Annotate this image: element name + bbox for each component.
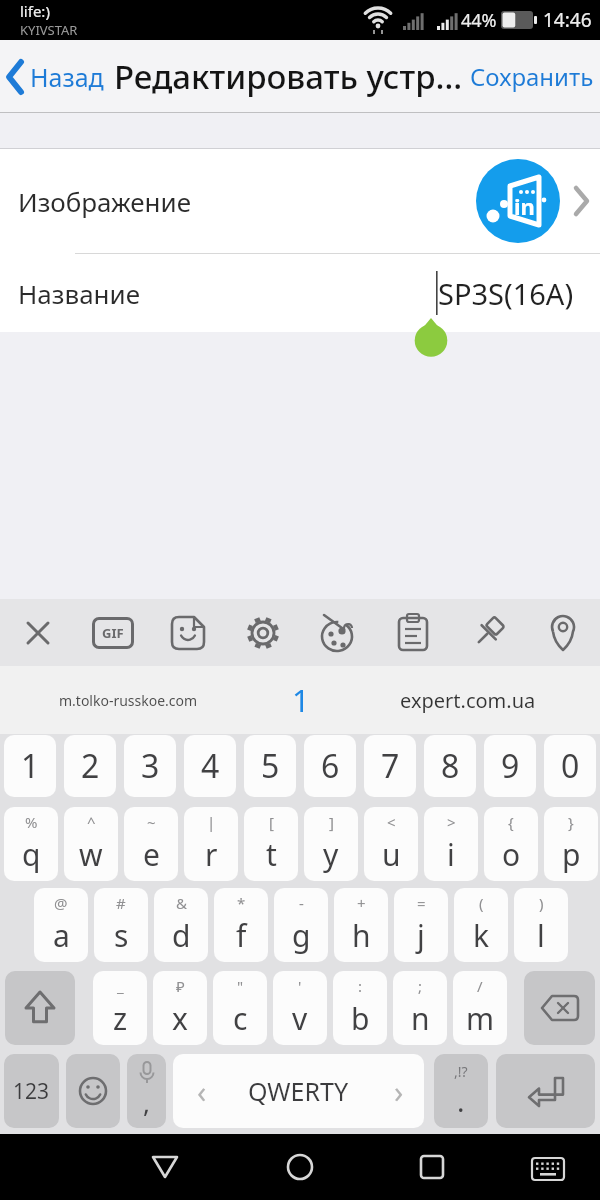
button[interactable]: ; bbox=[393, 971, 447, 1045]
staticText: < bbox=[387, 812, 396, 832]
button[interactable]: 3 bbox=[124, 735, 176, 797]
staticText: Название bbox=[18, 276, 141, 311]
button[interactable]: < bbox=[364, 807, 418, 881]
staticText: @ bbox=[54, 893, 68, 913]
staticText: } bbox=[568, 812, 574, 832]
button[interactable]: GIF bbox=[75, 599, 150, 666]
button[interactable]: ) bbox=[514, 888, 568, 962]
button[interactable]: 123 bbox=[4, 1054, 59, 1128]
button[interactable]: + bbox=[334, 888, 388, 962]
button[interactable]: ^ bbox=[64, 807, 118, 881]
staticText: ( bbox=[479, 893, 484, 913]
staticText: QWERTY bbox=[248, 1074, 349, 1108]
button[interactable] bbox=[531, 1157, 565, 1181]
staticText: Изображение bbox=[18, 184, 192, 219]
staticText: : bbox=[358, 976, 363, 996]
button[interactable]: _ bbox=[93, 971, 147, 1045]
staticText: SP3S(16A) bbox=[438, 274, 574, 313]
button[interactable] bbox=[5, 971, 75, 1045]
button[interactable]: } bbox=[544, 807, 598, 881]
button[interactable]: * bbox=[214, 888, 268, 962]
button[interactable] bbox=[151, 1155, 179, 1179]
button[interactable]: 8 bbox=[424, 735, 476, 797]
button[interactable]: / bbox=[453, 971, 507, 1045]
button[interactable]: # bbox=[94, 888, 148, 962]
staticText: 2 bbox=[81, 744, 100, 788]
button[interactable] bbox=[524, 971, 595, 1045]
button[interactable]: % bbox=[4, 807, 58, 881]
staticText: c bbox=[233, 998, 248, 1039]
button[interactable] bbox=[375, 599, 450, 666]
staticText: , bbox=[143, 1085, 150, 1120]
staticText: w bbox=[79, 834, 103, 875]
button[interactable]: ( bbox=[454, 888, 508, 962]
button[interactable] bbox=[225, 599, 300, 666]
button[interactable]: Сохранить bbox=[470, 60, 594, 93]
button[interactable]: 0 bbox=[544, 735, 596, 797]
staticText: s bbox=[114, 915, 129, 956]
staticText: y bbox=[323, 834, 339, 875]
staticText: o bbox=[502, 834, 521, 875]
staticText: ) bbox=[539, 893, 544, 913]
button[interactable]: = bbox=[394, 888, 448, 962]
staticText: 123 bbox=[13, 1077, 50, 1106]
staticText: 4 bbox=[201, 744, 220, 788]
staticText: k bbox=[473, 915, 490, 956]
button[interactable]: 1 bbox=[251, 666, 351, 734]
button[interactable]: " bbox=[213, 971, 267, 1045]
staticText: e bbox=[143, 834, 160, 875]
button[interactable]: Изображение bbox=[0, 149, 600, 253]
button[interactable] bbox=[300, 599, 375, 666]
button[interactable]: > bbox=[424, 807, 478, 881]
button[interactable]: m.tolko-russkoe.com bbox=[28, 666, 228, 734]
staticText: % bbox=[25, 812, 38, 832]
button[interactable] bbox=[150, 599, 225, 666]
button[interactable]: : bbox=[333, 971, 387, 1045]
button[interactable]: [ bbox=[244, 807, 298, 881]
staticText: a bbox=[53, 915, 70, 956]
staticText: ; bbox=[418, 976, 423, 996]
button[interactable] bbox=[450, 599, 525, 666]
button[interactable]: , bbox=[127, 1054, 166, 1128]
button[interactable]: - bbox=[274, 888, 328, 962]
button[interactable] bbox=[0, 599, 75, 666]
button[interactable]: expert.com.ua bbox=[368, 666, 568, 734]
staticText: [ bbox=[269, 812, 274, 832]
staticText: p bbox=[562, 834, 581, 875]
button[interactable]: 2 bbox=[64, 735, 116, 797]
button[interactable] bbox=[525, 599, 600, 666]
button[interactable]: Название bbox=[0, 254, 600, 332]
button[interactable]: ₽ bbox=[153, 971, 207, 1045]
staticText: 1 bbox=[21, 744, 40, 788]
button[interactable]: 5 bbox=[244, 735, 296, 797]
button[interactable]: Назад bbox=[6, 59, 104, 95]
button[interactable] bbox=[419, 1154, 445, 1180]
button[interactable]: & bbox=[154, 888, 208, 962]
button[interactable]: 1 bbox=[4, 735, 56, 797]
button[interactable]: @ bbox=[34, 888, 88, 962]
button[interactable]: 6 bbox=[304, 735, 356, 797]
staticText: 7 bbox=[381, 744, 400, 788]
staticText: in bbox=[514, 191, 535, 221]
button[interactable]: ] bbox=[304, 807, 358, 881]
button[interactable]: 9 bbox=[484, 735, 536, 797]
button[interactable] bbox=[66, 1054, 120, 1128]
button[interactable]: ,!? bbox=[434, 1054, 488, 1128]
button[interactable] bbox=[286, 1153, 314, 1181]
staticText: h bbox=[352, 915, 371, 956]
staticText: u bbox=[382, 834, 401, 875]
staticText: m bbox=[466, 998, 495, 1039]
button[interactable]: { bbox=[484, 807, 538, 881]
staticText: ,!? bbox=[454, 1062, 468, 1081]
staticText: b bbox=[351, 998, 370, 1039]
button[interactable]: ' bbox=[273, 971, 327, 1045]
staticText: 6 bbox=[321, 744, 340, 788]
staticText: ' bbox=[298, 976, 302, 996]
button[interactable]: ~ bbox=[124, 807, 178, 881]
button[interactable]: | bbox=[184, 807, 238, 881]
staticText: 0 bbox=[561, 744, 580, 788]
button[interactable]: 4 bbox=[184, 735, 236, 797]
button[interactable]: 7 bbox=[364, 735, 416, 797]
button[interactable]: ‹ bbox=[173, 1054, 424, 1128]
button[interactable] bbox=[496, 1054, 595, 1128]
